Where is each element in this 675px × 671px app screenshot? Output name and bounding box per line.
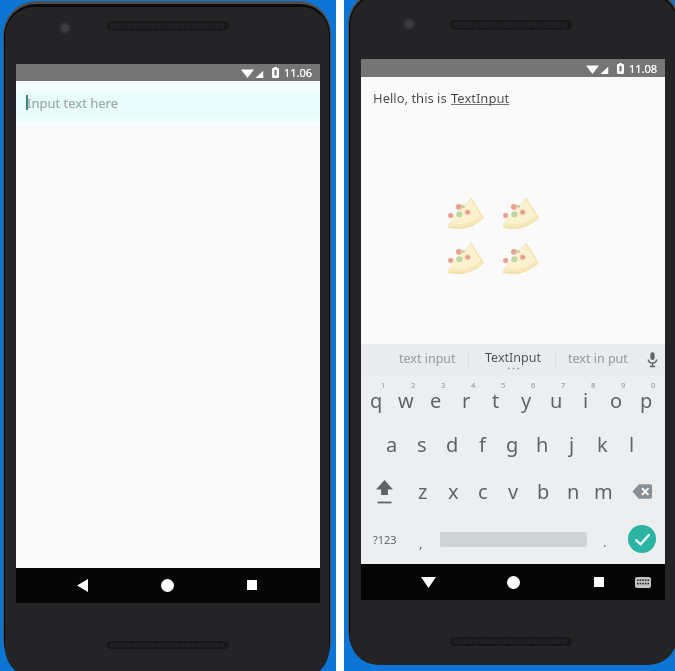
button[interactable]: Shift <box>361 468 408 515</box>
button[interactable]: d <box>437 420 467 468</box>
button[interactable]: j <box>557 420 587 468</box>
staticText: t <box>492 387 500 414</box>
staticText: l <box>629 431 635 458</box>
staticText: q <box>370 387 383 414</box>
staticText: text input <box>399 350 456 367</box>
staticText: m <box>594 478 613 505</box>
button[interactable]: Back <box>65 568 99 602</box>
button[interactable]: Voice input <box>640 344 665 375</box>
staticText: 5 <box>501 380 506 390</box>
button[interactable]: ?123 <box>364 515 406 563</box>
button[interactable]: Home <box>496 565 530 599</box>
button[interactable]: 2 <box>391 375 421 420</box>
button[interactable]: f <box>467 420 497 468</box>
button[interactable]: s <box>407 420 437 468</box>
staticText: ?123 <box>373 532 397 547</box>
button[interactable]: z <box>408 468 438 515</box>
button[interactable]: g <box>497 420 527 468</box>
button[interactable]: n <box>558 468 588 515</box>
staticText: 11.06 <box>284 65 313 80</box>
staticText: f <box>479 431 486 458</box>
button[interactable]: 0 <box>631 375 661 420</box>
button[interactable]: Recents <box>235 568 269 602</box>
staticText: w <box>398 387 414 414</box>
button[interactable]: Enter <box>619 515 665 563</box>
staticText: a <box>386 431 398 458</box>
button[interactable]: m <box>588 468 618 515</box>
button[interactable]: 6 <box>511 375 541 420</box>
staticText: , <box>419 534 423 552</box>
staticText: v <box>508 478 519 505</box>
staticText: j <box>569 431 575 458</box>
staticText: 1 <box>381 380 386 390</box>
button[interactable]: c <box>468 468 498 515</box>
button[interactable]: 8 <box>571 375 601 420</box>
staticText: . <box>603 533 607 551</box>
staticText: s <box>417 431 427 458</box>
button[interactable]: Space <box>436 515 591 563</box>
staticText: 9 <box>621 380 626 390</box>
button[interactable]: TextInput <box>470 344 555 375</box>
button[interactable]: v <box>498 468 528 515</box>
staticText: u <box>550 387 563 414</box>
button[interactable]: Change keyboard <box>626 565 660 599</box>
staticText: Input text here <box>27 94 119 112</box>
staticText: text in put <box>568 350 628 367</box>
button[interactable]: b <box>528 468 558 515</box>
staticText: Hello, this is <box>373 89 451 107</box>
staticText: g <box>506 431 519 458</box>
staticText: z <box>418 478 428 505</box>
staticText: y <box>521 387 532 414</box>
button[interactable]: , <box>405 515 436 563</box>
button[interactable]: 5 <box>481 375 511 420</box>
staticText: p <box>640 387 653 414</box>
button[interactable]: 1 <box>361 375 391 420</box>
staticText: 2 <box>411 380 416 390</box>
button[interactable]: 3 <box>421 375 451 420</box>
staticText: TextInput <box>451 89 510 107</box>
staticText: 0 <box>651 380 656 390</box>
button[interactable]: text in put <box>555 344 640 375</box>
staticText: d <box>446 431 459 458</box>
button[interactable]: k <box>587 420 617 468</box>
button[interactable]: Home <box>150 568 184 602</box>
staticText: TextInput <box>485 349 541 366</box>
button[interactable]: x <box>438 468 468 515</box>
staticText: c <box>478 478 488 505</box>
button[interactable]: 7 <box>541 375 571 420</box>
staticText: 7 <box>561 380 566 390</box>
staticText: 8 <box>591 380 596 390</box>
staticText: 6 <box>531 380 536 390</box>
button[interactable]: . <box>591 515 619 563</box>
button[interactable]: l <box>617 420 647 468</box>
button[interactable]: h <box>527 420 557 468</box>
button[interactable]: Recents <box>582 565 616 599</box>
staticText: k <box>597 431 608 458</box>
staticText: 11.08 <box>629 61 658 76</box>
button[interactable]: 4 <box>451 375 481 420</box>
staticText: n <box>567 478 580 505</box>
staticText: 4 <box>471 380 476 390</box>
staticText: r <box>462 387 471 414</box>
staticText: x <box>448 478 459 505</box>
button[interactable]: Hide keyboard <box>411 565 445 599</box>
staticText: i <box>583 387 589 414</box>
button[interactable]: 9 <box>601 375 631 420</box>
button[interactable]: text input <box>385 344 470 375</box>
staticText: e <box>430 387 442 414</box>
staticText: 3 <box>441 380 446 390</box>
button[interactable]: a <box>377 420 407 468</box>
staticText: h <box>536 431 549 458</box>
button[interactable]: Backspace <box>618 468 665 515</box>
staticText: b <box>537 478 550 505</box>
staticText: o <box>610 387 623 414</box>
